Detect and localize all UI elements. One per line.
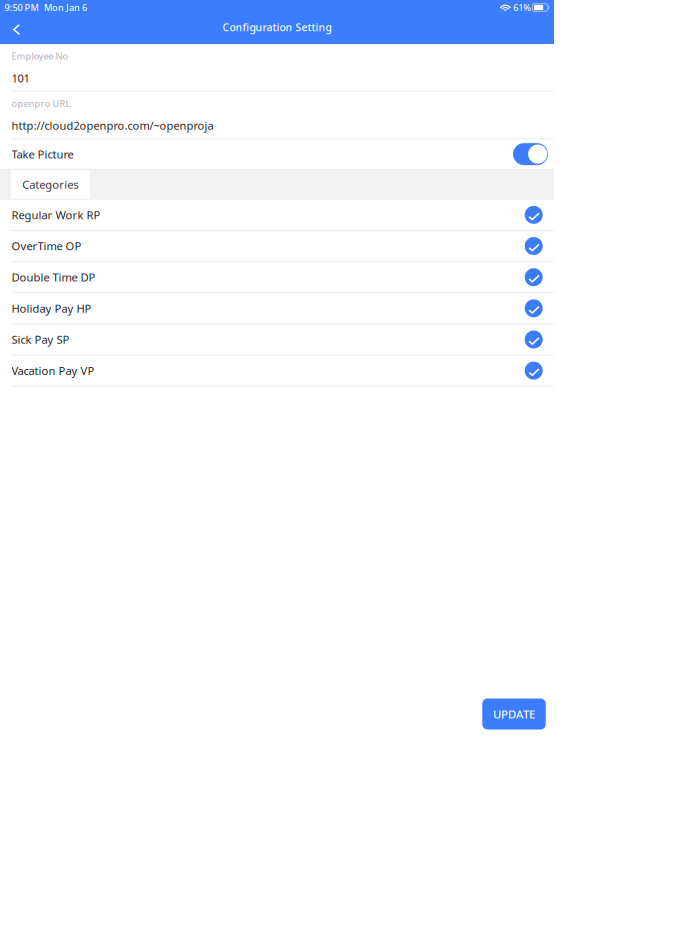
staticText: Regular Work RP bbox=[11, 207, 100, 222]
staticText: Mon Jan 6 bbox=[44, 1, 87, 14]
staticText: 101 bbox=[11, 70, 29, 86]
staticText: 9:50 PM bbox=[4, 1, 38, 14]
button[interactable]: UPDATE bbox=[482, 698, 546, 729]
staticText: Categories bbox=[22, 177, 78, 192]
staticText: openpro URL bbox=[11, 97, 70, 110]
staticText: Take Picture bbox=[11, 146, 73, 162]
staticText: OverTime OP bbox=[11, 238, 81, 254]
button[interactable]: Take Picture bbox=[513, 143, 548, 165]
button[interactable]: OverTime OP bbox=[0, 231, 554, 262]
staticText: UPDATE bbox=[493, 706, 535, 722]
staticText: http://cloud2openpro.com/~openproja bbox=[11, 118, 213, 133]
staticText: 61% bbox=[513, 1, 531, 14]
button[interactable]: Vacation Pay VP bbox=[0, 355, 554, 387]
staticText: Employee No bbox=[11, 49, 68, 62]
button[interactable]: Sick Pay SP bbox=[0, 324, 554, 355]
staticText: Vacation Pay VP bbox=[11, 363, 94, 378]
button[interactable]: Back bbox=[0, 15, 33, 44]
button[interactable]: Categories bbox=[11, 170, 90, 200]
staticText: Sick Pay SP bbox=[11, 332, 69, 347]
button[interactable]: Holiday Pay HP bbox=[0, 293, 554, 324]
staticText: Holiday Pay HP bbox=[11, 301, 91, 316]
button[interactable]: Regular Work RP bbox=[0, 200, 554, 231]
button[interactable]: Double Time DP bbox=[0, 262, 554, 293]
staticText: Double Time DP bbox=[11, 269, 95, 285]
staticText: Configuration Setting bbox=[222, 20, 331, 34]
